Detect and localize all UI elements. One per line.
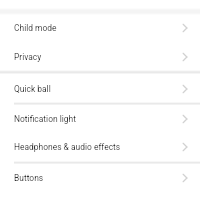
button[interactable]: Privacy	[0, 42, 200, 71]
button[interactable]: Quick ball	[0, 73, 200, 103]
staticText: Headphones & audio effects	[14, 142, 121, 152]
button[interactable]: Buttons	[0, 163, 200, 192]
staticText: Quick ball	[14, 84, 51, 94]
staticText: Notification light	[14, 114, 76, 124]
button[interactable]: Headphones & audio effects	[0, 133, 200, 162]
staticText: Privacy	[14, 52, 42, 62]
button[interactable]: Child mode	[0, 14, 200, 42]
staticText: Buttons	[14, 173, 44, 183]
button[interactable]: Notification light	[0, 104, 200, 133]
staticText: Child mode	[14, 23, 57, 33]
